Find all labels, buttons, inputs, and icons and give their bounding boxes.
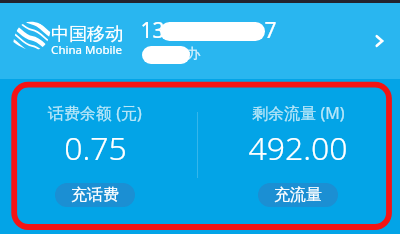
staticText: 剩余流量 (M): [252, 102, 345, 124]
button[interactable]: 充流量: [258, 183, 338, 207]
staticText: 话费余额 (元): [48, 102, 142, 124]
staticText: 中国移动: [51, 23, 123, 46]
staticText: China Mobile: [51, 42, 122, 58]
button[interactable]: 充话费: [55, 183, 135, 207]
staticText: 13: [140, 16, 165, 45]
button[interactable]: 中国移动: [0, 0, 400, 79]
staticText: 492.00: [248, 126, 348, 170]
staticText: 0.75: [64, 126, 127, 170]
staticText: 办: [186, 45, 200, 63]
button[interactable]: More: [365, 27, 393, 55]
staticText: 充流量: [274, 185, 322, 205]
staticText: 7: [264, 16, 277, 45]
staticText: 充话费: [71, 185, 119, 205]
